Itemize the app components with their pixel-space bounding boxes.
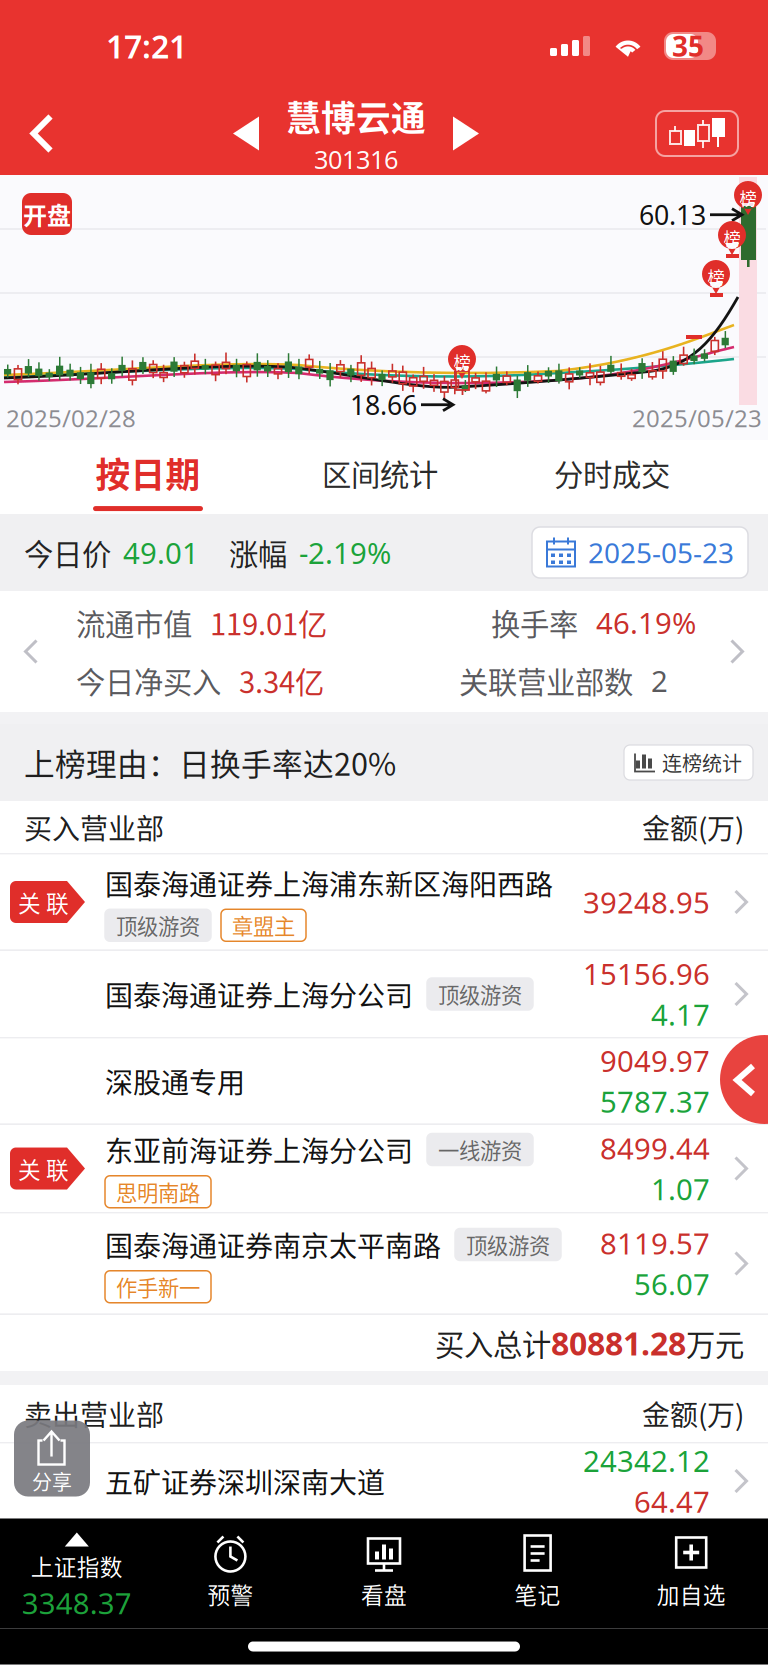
staticText: 看盘 [361,1577,407,1610]
staticText: 49.01 [123,533,199,572]
staticText: 46.19% [596,603,696,642]
staticText: 3348.37 [22,1583,132,1622]
staticText: 作手新一 [116,1271,200,1302]
staticText: 2 [651,661,668,700]
button[interactable]: 按日期 [32,440,264,514]
staticText: 流通市值 [76,601,192,644]
staticText: 上证指数 [31,1549,123,1582]
staticText: 今日价 [24,531,111,574]
staticText: 按日期 [95,448,200,498]
staticText: 国泰海通证券上海分公司 [105,974,413,1014]
staticText: 五矿证券深圳深南大道 [105,1461,385,1501]
button[interactable]: 上证指数 [0,1518,154,1628]
staticText: 买入营业部 [24,807,164,847]
button[interactable]: 预警 [154,1518,307,1628]
staticText: 加自选 [657,1577,726,1610]
button[interactable]: Chart type [656,111,738,156]
button[interactable]: 分时成交 [496,440,728,514]
staticText: 思明南路 [116,1176,200,1207]
staticText: 56.07 [634,1264,710,1303]
staticText: 60.13 [639,197,706,232]
button[interactable]: Share [14,1424,90,1500]
staticText: 东亚前海证券上海分公司 [105,1129,413,1170]
staticText: 榜 [707,264,724,289]
staticText: 39248.95 [583,882,710,921]
staticText: 119.01亿 [210,601,327,644]
staticText: 顶级游资 [116,910,200,941]
staticText: 顶级游资 [438,979,522,1009]
button[interactable]: 东亚前海证券上海分公司 [0,1125,768,1212]
staticText: 国泰海通证券南京太平南路 [105,1224,441,1265]
staticText: 换手率 [491,601,578,644]
button[interactable]: 国泰海通证券南京太平南路 [0,1213,768,1313]
staticText: 关 联 [18,1152,69,1185]
staticText: 18.66 [350,387,417,422]
staticText: 64.47 [634,1482,710,1521]
button[interactable]: 区间统计 [264,440,496,514]
button[interactable]: Previous stock [214,92,278,175]
button[interactable]: 深股通专用 [0,1038,768,1123]
staticText: -2.19% [299,533,391,572]
staticText: 8499.44 [600,1128,710,1167]
staticText: 卖出营业部 [24,1393,164,1434]
staticText: 2025/02/28 [6,402,136,434]
staticText: 分享 [32,1466,72,1495]
staticText: 35 [672,27,704,65]
button[interactable]: 国泰海通证券上海浦东新区海阳西路 [0,854,768,949]
staticText: 9049.97 [600,1041,710,1080]
button[interactable]: 笔记 [461,1518,614,1628]
staticText: 金额(万) [642,807,744,847]
staticText: 2025-05-23 [588,534,734,571]
staticText: 一线游资 [438,1134,522,1165]
staticText: 开盘 [23,197,71,231]
staticText: 17:21 [106,25,187,67]
staticText: 15156.96 [583,954,710,993]
staticText: 关联营业部数 [459,659,633,702]
staticText: 80881.28 [551,1322,686,1364]
staticText: 4.17 [651,995,710,1034]
staticText: 5787.37 [600,1082,710,1121]
staticText: 连榜统计 [662,748,742,777]
staticText: 章盟主 [232,910,295,941]
button[interactable]: 五矿证券深圳深南大道 [0,1443,768,1518]
staticText: 慧博云通 [286,91,426,141]
staticText: 301316 [314,142,398,176]
staticText: 3.34亿 [239,659,324,702]
staticText: 关 联 [18,886,69,918]
staticText: 分时成交 [554,452,670,494]
button[interactable]: 国泰海通证券上海分公司 [0,951,768,1037]
staticText: 万元 [686,1322,744,1364]
button[interactable]: 加自选 [614,1518,768,1628]
staticText: 8119.57 [600,1223,710,1262]
staticText: 金额(万) [642,1393,744,1434]
staticText: 笔记 [515,1577,561,1610]
button[interactable]: Back [0,92,84,175]
staticText: 预警 [207,1577,253,1610]
staticText: 2025/05/23 [632,402,762,434]
button[interactable]: 连榜统计 [624,745,753,780]
staticText: 涨幅 [229,531,287,574]
button[interactable]: 2025-05-23 [532,527,748,578]
button[interactable]: Collapse panel [720,1035,768,1124]
staticText: 区间统计 [322,452,438,494]
staticText: 买入总计 [435,1322,551,1364]
staticText: 1.07 [651,1169,710,1208]
staticText: 顶级游资 [466,1229,550,1260]
staticText: 今日净买入 [76,659,221,702]
button[interactable]: 看盘 [307,1518,461,1628]
staticText: 榜 [723,225,740,250]
staticText: 榜 [739,185,756,210]
staticText: 深股通专用 [105,1061,245,1101]
staticText: 24342.12 [583,1441,710,1480]
staticText: 榜 [453,349,470,374]
button[interactable]: Next stock [434,92,498,175]
staticText: 上榜理由：日换手率达20% [24,740,396,785]
staticText: 国泰海通证券上海浦东新区海阳西路 [105,863,553,903]
